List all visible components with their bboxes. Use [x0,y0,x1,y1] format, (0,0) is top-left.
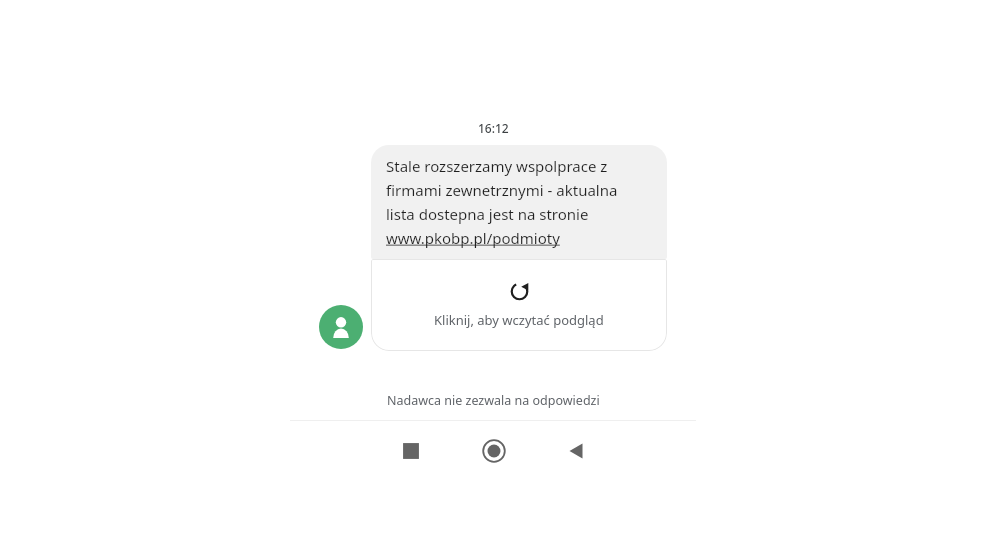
staticText: Kliknij, aby wczytać podgląd [434,311,604,329]
button[interactable]: Reload preview [371,259,667,351]
other: Reload preview [509,281,530,302]
staticText: Stale rozszerzamy wspolprace z [386,156,608,176]
button[interactable]: Back [558,433,594,469]
button[interactable]: Recent apps [393,433,429,469]
button[interactable]: Sender avatar [319,305,363,349]
staticText: lista dostepna jest na stronie [386,204,589,224]
staticText: 16:12 [478,120,509,136]
button[interactable]: Home [476,433,512,469]
staticText: firmami zewnetrznymi - aktualna [386,180,618,200]
staticText: www.pkobp.pl/podmioty [386,228,560,248]
staticText: Nadawca nie zezwala na odpowiedzi [387,392,600,409]
button[interactable]: Stale rozszerzamy wspolprace z [371,145,667,259]
